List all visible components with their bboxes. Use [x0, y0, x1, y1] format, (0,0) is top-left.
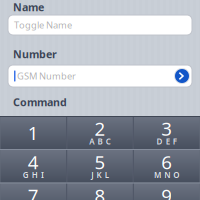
- staticText: B: [97, 136, 102, 147]
- staticText: 3: [161, 116, 172, 141]
- button[interactable]: 7: [0, 183, 66, 200]
- staticText: C: [106, 136, 111, 147]
- staticText: 8: [94, 183, 105, 200]
- staticText: 2: [94, 116, 105, 141]
- staticText: O: [173, 170, 179, 180]
- staticText: H: [32, 170, 38, 180]
- staticText: M: [154, 170, 161, 180]
- staticText: G: [23, 170, 29, 180]
- staticText: 1: [28, 120, 39, 145]
- staticText: 4: [28, 150, 39, 174]
- staticText: GSM Number: [17, 70, 76, 82]
- staticText: A: [89, 136, 94, 147]
- staticText: Name: [13, 0, 44, 14]
- staticText: N: [164, 170, 170, 180]
- staticText: E: [166, 136, 170, 147]
- button[interactable]: 2: [67, 116, 133, 149]
- staticText: F: [173, 136, 177, 147]
- staticText: 7: [28, 183, 39, 200]
- button[interactable]: 1: [0, 116, 66, 149]
- button[interactable]: Submit number: [173, 67, 190, 84]
- button[interactable]: 4: [0, 150, 66, 182]
- staticText: I: [41, 170, 44, 180]
- staticText: J: [91, 170, 93, 180]
- button[interactable]: 6: [134, 150, 199, 182]
- staticText: D: [156, 136, 162, 147]
- button[interactable]: 9: [134, 183, 199, 200]
- button[interactable]: 3: [134, 116, 199, 149]
- staticText: Number: [13, 47, 57, 61]
- button[interactable]: 8: [67, 183, 133, 200]
- staticText: 6: [161, 150, 172, 174]
- staticText: 9: [161, 183, 172, 200]
- staticText: L: [105, 170, 109, 180]
- staticText: K: [96, 170, 101, 180]
- staticText: Command: [13, 95, 67, 109]
- button[interactable]: 5: [67, 150, 133, 182]
- staticText: Toggle Name: [14, 19, 72, 31]
- staticText: 5: [94, 150, 105, 174]
